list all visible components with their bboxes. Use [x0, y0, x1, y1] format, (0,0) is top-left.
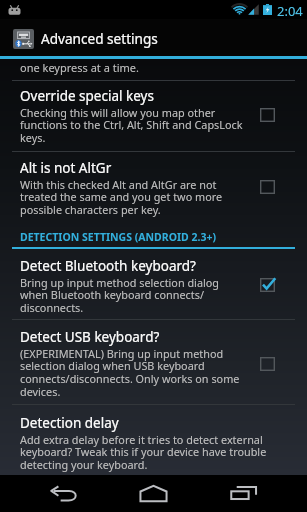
button[interactable]: Detection delay [0, 405, 307, 475]
staticText: (EXPERIMENTAL) Bring up input method sel… [20, 346, 240, 399]
button[interactable]: Unchecked [260, 108, 275, 122]
staticText: one keypress at a time. [20, 60, 139, 75]
button[interactable]: Detect Bluetooth keyboard? [0, 249, 307, 319]
staticText: Bring up input method selection dialog w… [20, 275, 220, 315]
button[interactable]: Back [14, 475, 114, 512]
staticText: Detection delay [20, 414, 119, 432]
button[interactable]: Alt is not AltGr [0, 152, 307, 225]
button[interactable]: Checked [260, 278, 275, 292]
button[interactable]: Recent apps [204, 475, 307, 512]
staticText: DETECTION SETTINGS (ANDROID 2.3+) [20, 230, 216, 244]
button[interactable]: Home [104, 475, 204, 512]
button[interactable]: Unchecked [260, 357, 275, 371]
staticText: With this checked Alt and AltGr are not … [20, 177, 223, 217]
staticText: Checking this will allow you map other f… [20, 105, 243, 145]
staticText: Add extra delay before it tries to detec… [20, 432, 267, 472]
button[interactable]: App icon [0, 19, 307, 56]
button[interactable]: Unchecked [260, 180, 275, 194]
button[interactable]: Detect USB keyboard? [0, 320, 307, 404]
button[interactable]: Override special keys [0, 81, 307, 151]
staticText: Detect USB keyboard? [20, 328, 160, 346]
staticText: 2:04 [277, 2, 303, 20]
staticText: Alt is not AltGr [20, 159, 112, 177]
staticText: Detect Bluetooth keyboard? [20, 257, 196, 275]
other: App icon [13, 29, 34, 49]
staticText: Override special keys [20, 87, 154, 105]
staticText: Advanced settings [41, 29, 158, 48]
